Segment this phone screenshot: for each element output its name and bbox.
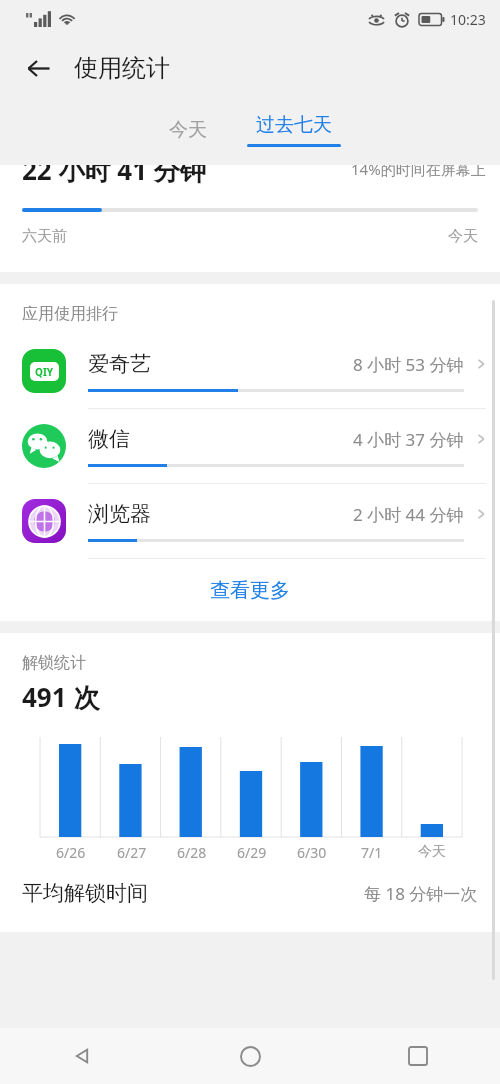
button[interactable]: Recents (394, 1032, 442, 1080)
staticText: 14%的时间在屏幕上 (351, 165, 486, 179)
staticText: 每 18 分钟一次 (364, 882, 478, 905)
staticText: 8 小时 53 分钟 (353, 353, 464, 376)
staticText: 6/27 (117, 843, 147, 862)
staticText: 4 小时 37 分钟 (353, 428, 464, 451)
staticText: 微信 (88, 426, 130, 452)
button[interactable]: 过去七天 (239, 113, 349, 147)
staticText: 爱奇艺 (88, 351, 151, 377)
staticText: 6/28 (177, 843, 207, 862)
staticText: 6/26 (56, 843, 86, 862)
staticText: 10:23 (450, 10, 486, 29)
button[interactable]: Back (14, 44, 62, 92)
staticText: 过去七天 (256, 113, 332, 137)
button[interactable]: 今天 (151, 108, 225, 152)
button[interactable]: 微信 (0, 409, 500, 483)
button[interactable]: QIY (0, 334, 500, 408)
button[interactable]: 平均解锁时间 (0, 874, 500, 912)
staticText: 今天 (448, 227, 478, 246)
staticText: 应用使用排行 (22, 304, 118, 324)
staticText: 解锁统计 (22, 653, 86, 673)
staticText: 2 小时 44 分钟 (353, 503, 464, 526)
staticText: 平均解锁时间 (22, 880, 148, 906)
staticText: 浏览器 (88, 501, 151, 527)
staticText: 使用统计 (74, 53, 170, 83)
staticText: 22 小时 41 分钟 (22, 165, 206, 186)
staticText: 查看更多 (210, 578, 290, 603)
button[interactable]: Home (226, 1032, 274, 1080)
staticText: 7/1 (361, 843, 383, 862)
button[interactable]: 浏览器 (0, 484, 500, 558)
staticText: 六天前 (22, 227, 67, 246)
staticText: QIY (35, 365, 54, 379)
staticText: 今天 (418, 843, 446, 861)
staticText: 6/30 (297, 843, 327, 862)
button[interactable]: Back (58, 1032, 106, 1080)
button[interactable]: 查看更多 (0, 559, 500, 621)
staticText: 6/29 (237, 843, 267, 862)
staticText: 491 次 (22, 679, 100, 715)
staticText: 今天 (169, 118, 207, 142)
